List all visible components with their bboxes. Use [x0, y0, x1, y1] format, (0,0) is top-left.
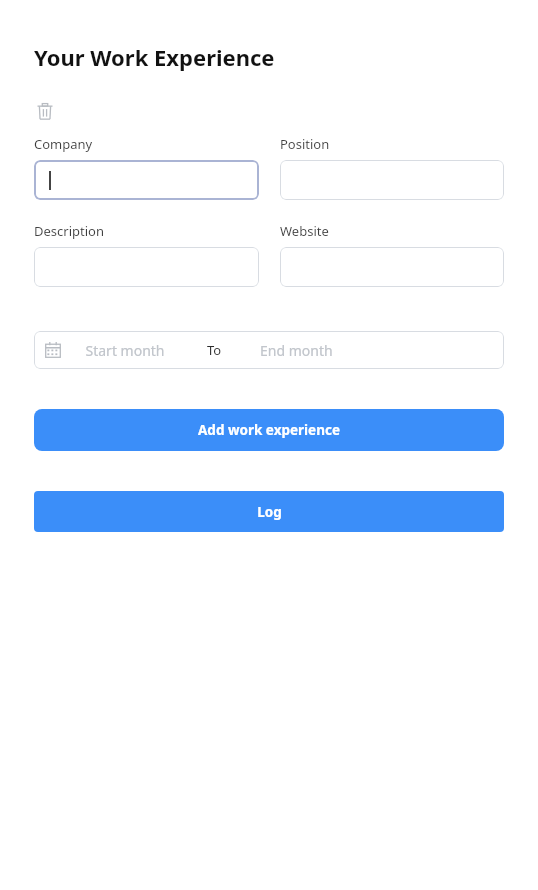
staticText: To: [207, 341, 222, 359]
button[interactable]: Start month: [34, 331, 504, 369]
button[interactable]: Add work experience: [34, 409, 504, 451]
button[interactable]: Company: [34, 160, 259, 200]
staticText: Add work experience: [198, 421, 340, 439]
button[interactable]: Delete work experience: [34, 100, 56, 122]
staticText: Company: [34, 135, 93, 153]
staticText: Website: [280, 222, 329, 240]
staticText: Description: [34, 222, 104, 240]
button[interactable]: Description: [34, 247, 259, 287]
staticText: End month: [260, 341, 333, 360]
button[interactable]: Log: [34, 491, 504, 532]
staticText: Position: [280, 135, 330, 153]
button[interactable]: Position: [280, 160, 504, 200]
staticText: Start month: [75, 341, 175, 360]
button[interactable]: Website: [280, 247, 504, 287]
staticText: Log: [257, 503, 282, 521]
staticText: Your Work Experience: [34, 42, 275, 72]
